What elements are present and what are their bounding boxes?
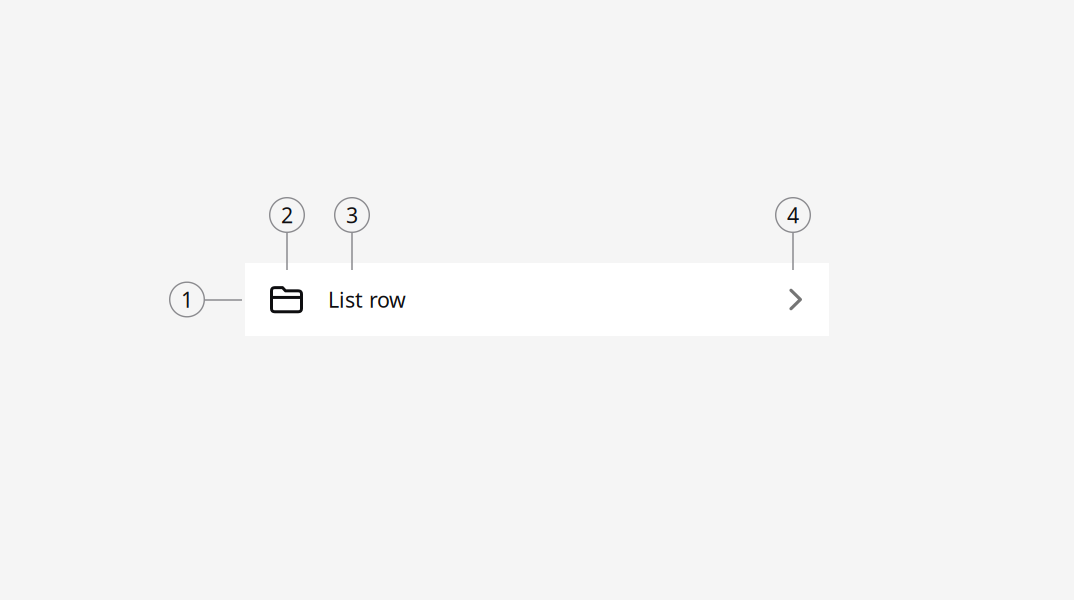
staticText: 4: [787, 201, 799, 229]
staticText: 3: [346, 201, 358, 229]
button[interactable]: List row: [245, 263, 829, 336]
staticText: List row: [328, 285, 406, 314]
staticText: 2: [281, 201, 293, 229]
staticText: 1: [181, 285, 193, 314]
